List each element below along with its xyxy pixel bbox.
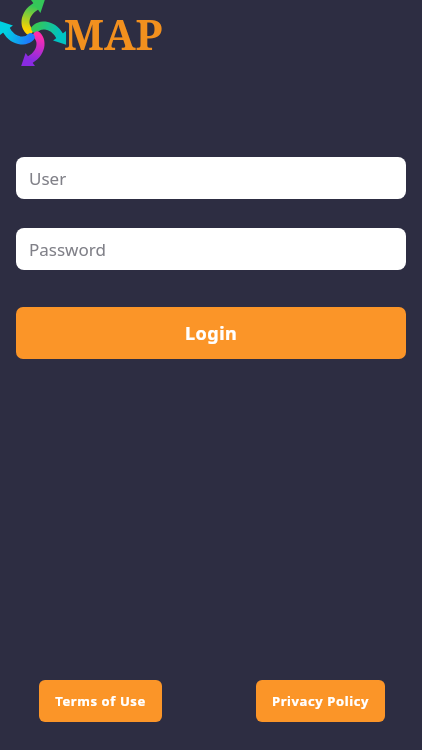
button[interactable]: Login (16, 307, 406, 359)
staticText: Privacy Policy (272, 692, 369, 710)
staticText: Login (185, 321, 238, 346)
button[interactable]: Privacy Policy (256, 680, 385, 722)
button[interactable]: User (16, 157, 406, 199)
staticText: Terms of Use (55, 692, 146, 710)
other: MAP logo (4, 4, 62, 62)
button[interactable]: Password (16, 228, 406, 270)
staticText: User (29, 167, 67, 190)
button[interactable]: Terms of Use (39, 680, 162, 722)
staticText: MAP (64, 5, 163, 62)
staticText: Password (29, 238, 106, 261)
